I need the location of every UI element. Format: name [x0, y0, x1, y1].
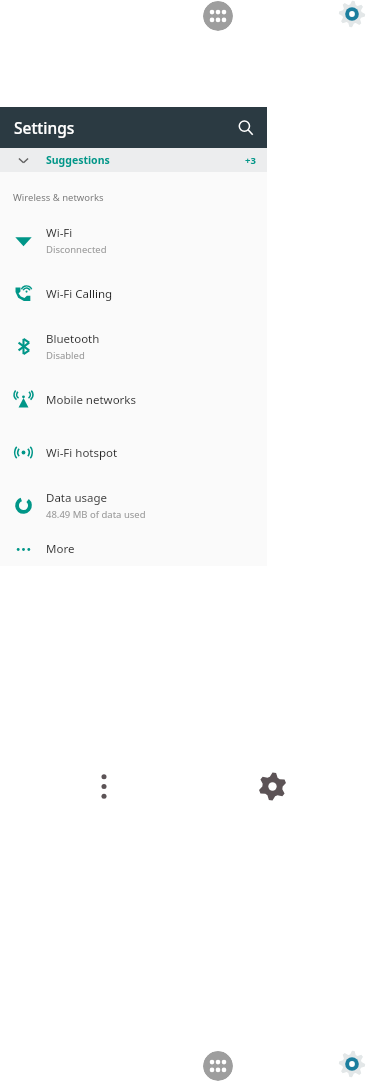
staticText: Suggestions — [46, 153, 110, 167]
staticText: Settings — [14, 117, 75, 138]
staticText: Data usage — [46, 490, 108, 506]
staticText: Wi-Fi Calling — [46, 286, 113, 302]
button[interactable]: Mobile networks — [0, 373, 267, 426]
staticText: Disconnected — [46, 243, 107, 256]
button[interactable]: Settings — [0, 107, 267, 148]
staticText: Disabled — [46, 349, 85, 362]
button[interactable]: Settings — [256, 770, 288, 802]
staticText: Wi-Fi — [46, 225, 73, 241]
button[interactable]: More — [0, 532, 267, 566]
button[interactable]: Apps — [203, 1051, 233, 1081]
staticText: Wireless & networks — [13, 191, 104, 204]
button[interactable]: Suggestions — [0, 148, 267, 172]
staticText: 48.49 MB of data used — [46, 508, 146, 521]
button[interactable]: Data usage — [0, 479, 267, 532]
staticText: Mobile networks — [46, 392, 137, 408]
button[interactable]: Wi-Fi Calling — [0, 267, 267, 320]
button[interactable]: Wi-Fi — [0, 214, 267, 267]
button[interactable]: Settings — [338, 1050, 366, 1078]
button[interactable]: Apps — [203, 1, 233, 31]
button[interactable]: Wi-Fi hotspot — [0, 426, 267, 479]
button[interactable]: Settings — [338, 0, 366, 28]
button[interactable]: More options — [93, 769, 115, 803]
button[interactable]: Search — [229, 111, 263, 145]
staticText: +3 — [245, 154, 256, 167]
staticText: Bluetooth — [46, 331, 100, 347]
staticText: Wi-Fi hotspot — [46, 445, 118, 461]
staticText: More — [46, 541, 75, 557]
button[interactable]: Bluetooth — [0, 320, 267, 373]
